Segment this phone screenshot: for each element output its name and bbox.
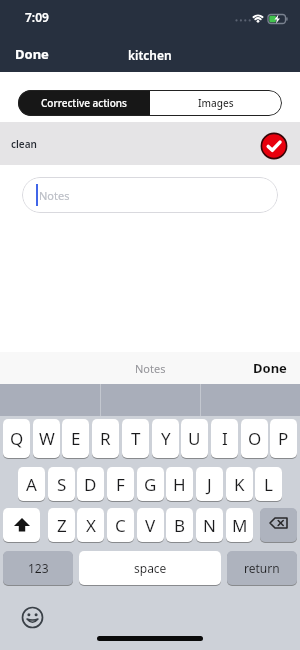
button[interactable]: G — [137, 467, 164, 501]
button[interactable]: L — [255, 467, 282, 501]
button[interactable]: V — [137, 508, 164, 542]
button[interactable]: U — [181, 419, 208, 458]
button[interactable]: A — [18, 467, 45, 501]
button[interactable]: F — [107, 467, 134, 501]
staticText: E — [71, 427, 81, 450]
staticText: K — [234, 473, 245, 496]
staticText: S — [57, 473, 67, 496]
button[interactable]: E — [62, 419, 89, 458]
staticText: O — [248, 427, 262, 450]
staticText: 7:09 — [25, 9, 49, 25]
button[interactable]: Done — [253, 359, 287, 377]
button[interactable]: D — [77, 467, 104, 501]
button[interactable]: W — [33, 419, 60, 458]
staticText: space — [134, 560, 167, 576]
staticText: U — [188, 427, 201, 450]
button[interactable]: R — [92, 419, 119, 458]
staticText: A — [26, 473, 37, 496]
button[interactable]: T — [122, 419, 149, 458]
staticText: clean — [11, 137, 37, 151]
staticText: Notes — [135, 361, 166, 376]
staticText: H — [173, 473, 186, 496]
button[interactable] — [260, 132, 288, 160]
button[interactable]: B — [166, 508, 193, 542]
button[interactable] — [260, 508, 297, 542]
button[interactable]: O — [241, 419, 268, 458]
button[interactable]: clean — [0, 122, 300, 165]
button[interactable]: X — [77, 508, 104, 542]
button[interactable]: Corrective actions — [18, 90, 150, 116]
staticText: L — [264, 473, 273, 496]
staticText: Q — [10, 427, 24, 450]
button[interactable]: H — [166, 467, 193, 501]
button[interactable] — [22, 607, 43, 628]
staticText: D — [84, 473, 97, 496]
button[interactable]: Done — [15, 45, 49, 63]
button[interactable]: space — [79, 551, 221, 585]
staticText: P — [278, 427, 289, 450]
staticText: C — [115, 514, 126, 537]
staticText: B — [174, 514, 186, 537]
button[interactable]: M — [226, 508, 253, 542]
button[interactable]: P — [270, 419, 297, 458]
button[interactable]: I — [211, 419, 238, 458]
staticText: R — [100, 427, 111, 450]
staticText: 123 — [28, 560, 49, 576]
button[interactable]: 123 — [3, 551, 73, 585]
button[interactable]: N — [196, 508, 223, 542]
staticText: W — [39, 427, 55, 450]
button[interactable]: S — [48, 467, 75, 501]
staticText: T — [131, 427, 141, 450]
staticText: Notes — [39, 188, 70, 203]
staticText: V — [145, 514, 156, 537]
button[interactable]: return — [227, 551, 297, 585]
button[interactable]: Images — [150, 90, 282, 116]
staticText: G — [144, 473, 157, 496]
button[interactable]: Notes — [22, 177, 278, 213]
staticText: Z — [57, 514, 67, 537]
button[interactable]: Y — [152, 419, 179, 458]
button[interactable]: C — [107, 508, 134, 542]
button[interactable]: J — [196, 467, 223, 501]
button[interactable]: Z — [48, 508, 75, 542]
staticText: return — [244, 560, 280, 576]
staticText: I — [222, 427, 228, 450]
staticText: N — [203, 514, 216, 537]
button[interactable]: Q — [3, 419, 30, 458]
button[interactable] — [3, 508, 40, 542]
staticText: kitchen — [128, 47, 172, 63]
staticText: X — [86, 514, 96, 537]
staticText: Images — [198, 96, 234, 110]
staticText: J — [207, 473, 212, 496]
staticText: Y — [161, 427, 171, 450]
staticText: Corrective actions — [41, 96, 127, 110]
staticText: F — [116, 473, 125, 496]
staticText: M — [232, 514, 248, 537]
button[interactable]: K — [226, 467, 253, 501]
